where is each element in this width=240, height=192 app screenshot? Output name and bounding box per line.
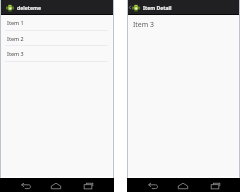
- staticText: Item 3: [7, 50, 24, 57]
- button[interactable]: Home: [47, 179, 65, 192]
- button[interactable]: Item 2: [0, 31, 114, 47]
- button[interactable]: Recent apps: [206, 179, 224, 192]
- staticText: deleteme: [17, 5, 42, 12]
- button[interactable]: Back: [17, 179, 35, 192]
- button[interactable]: Navigate up: [127, 0, 240, 15]
- staticText: Item Detail: [143, 5, 172, 12]
- staticText: Item 2: [7, 35, 24, 42]
- button[interactable]: Recent apps: [79, 179, 97, 192]
- button[interactable]: Home: [174, 179, 192, 192]
- button[interactable]: deleteme: [0, 0, 114, 15]
- staticText: Item 3: [133, 20, 154, 29]
- button[interactable]: Item 3: [0, 46, 114, 62]
- button[interactable]: Back: [144, 179, 162, 192]
- button[interactable]: Item 1: [0, 15, 114, 31]
- button[interactable]: Navigate up: [127, 0, 132, 15]
- staticText: Item 1: [7, 19, 24, 26]
